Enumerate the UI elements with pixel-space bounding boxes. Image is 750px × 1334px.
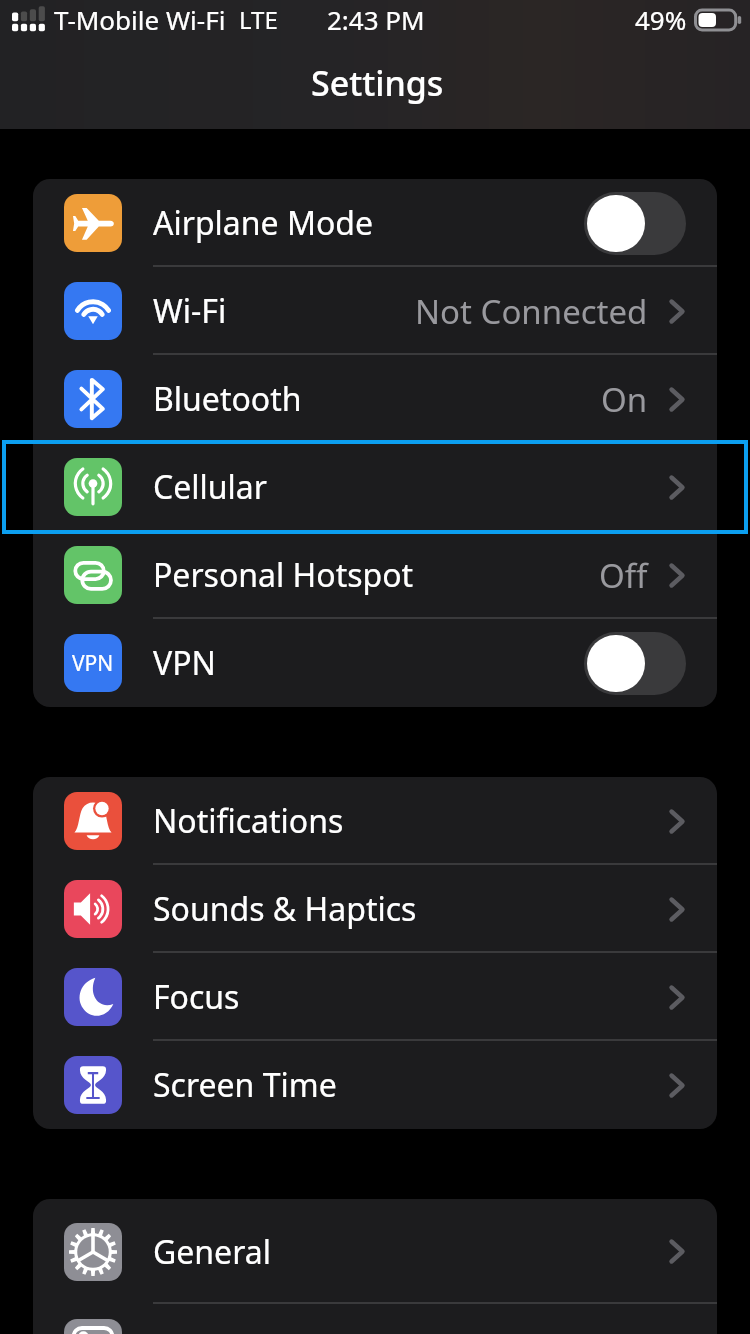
staticText: Bluetooth [153, 377, 302, 421]
staticText: 2:43 PM [327, 2, 425, 37]
staticText: VPN [72, 649, 114, 678]
staticText: Notifications [153, 799, 344, 843]
button[interactable]: General [33, 1199, 717, 1304]
staticText: General [153, 1230, 271, 1274]
staticText: Airplane Mode [153, 201, 374, 245]
staticText: Settings [311, 60, 444, 106]
staticText: T-Mobile Wi-Fi [54, 2, 226, 37]
staticText: Personal Hotspot [153, 553, 414, 597]
button[interactable]: Control Center [33, 1304, 717, 1334]
button[interactable]: Notifications [33, 777, 717, 865]
staticText: LTE [239, 3, 278, 36]
button[interactable]: Personal Hotspot [33, 531, 717, 619]
button[interactable]: Toggle [584, 632, 686, 695]
staticText: Sounds & Haptics [153, 887, 417, 931]
staticText: On [601, 377, 648, 422]
staticText: Focus [153, 975, 240, 1019]
button[interactable]: Cellular [33, 443, 717, 531]
button[interactable]: Wi-Fi [33, 267, 717, 355]
button[interactable]: Screen Time [33, 1041, 717, 1129]
staticText: Cellular [153, 465, 267, 509]
staticText: Not Connected [415, 289, 648, 334]
button[interactable]: Airplane Mode [33, 179, 717, 267]
button[interactable]: VPN [33, 619, 717, 707]
staticText: Off [599, 553, 648, 598]
button[interactable]: Cellular [2, 440, 748, 534]
staticText: Screen Time [153, 1063, 337, 1107]
staticText: Wi-Fi [153, 289, 227, 333]
button[interactable]: Focus [33, 953, 717, 1041]
staticText: VPN [153, 641, 216, 685]
button[interactable]: Sounds & Haptics [33, 865, 717, 953]
staticText: 49% [635, 2, 687, 37]
button[interactable]: Bluetooth [33, 355, 717, 443]
button[interactable]: Toggle [584, 192, 686, 255]
